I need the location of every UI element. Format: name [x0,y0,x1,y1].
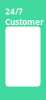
staticText: 24/7 Customer Service [5,6,44,38]
